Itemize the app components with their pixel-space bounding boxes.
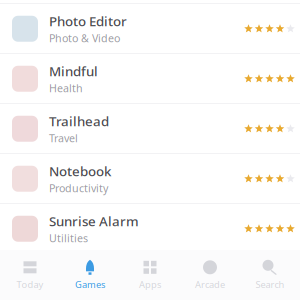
staticText: Productivity xyxy=(49,181,108,195)
button[interactable]: Today xyxy=(0,250,60,300)
button[interactable]: Trailhead xyxy=(0,104,300,154)
staticText: Utilities xyxy=(49,231,88,245)
staticText: Photo & Video xyxy=(49,31,120,45)
button[interactable]: Arcade xyxy=(180,250,240,300)
staticText: Today xyxy=(16,278,43,291)
staticText: Search xyxy=(255,278,284,291)
staticText: Health xyxy=(49,81,83,95)
button[interactable]: Search xyxy=(240,250,300,300)
staticText: Arcade xyxy=(195,278,225,291)
button[interactable]: Sunrise Alarm xyxy=(0,204,300,254)
staticText: Photo Editor xyxy=(49,12,127,30)
staticText: Notebook xyxy=(49,162,111,180)
staticText: Games xyxy=(75,278,105,291)
staticText: Mindful xyxy=(49,62,98,80)
staticText: Trailhead xyxy=(49,112,109,130)
staticText: Travel xyxy=(49,131,78,145)
button[interactable]: Games xyxy=(60,250,120,300)
button[interactable]: Photo Editor xyxy=(0,4,300,54)
button[interactable]: Notebook xyxy=(0,154,300,204)
button[interactable]: Mindful xyxy=(0,54,300,104)
staticText: Sunrise Alarm xyxy=(49,212,139,230)
staticText: Apps xyxy=(139,278,161,291)
button[interactable]: Apps xyxy=(120,250,180,300)
button[interactable]: Daily Ledger xyxy=(0,0,300,4)
